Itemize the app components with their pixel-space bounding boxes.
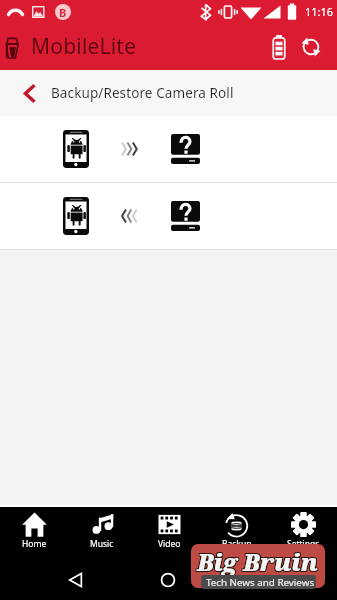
button[interactable]: Home <box>154 566 182 594</box>
button[interactable]: Restore camera roll from drive <box>0 183 337 249</box>
staticText: B <box>59 5 67 20</box>
staticText: Backup/Restore Camera Roll <box>51 84 234 102</box>
button[interactable]: Settings <box>270 507 337 559</box>
staticText: Big Bruin <box>198 545 319 578</box>
staticText: Big Bruin <box>198 546 319 579</box>
button[interactable]: Back <box>61 566 89 594</box>
button[interactable]: Home <box>0 507 68 559</box>
button[interactable]: Video <box>136 507 203 559</box>
staticText: 11:16 <box>305 4 334 19</box>
button[interactable]: Music <box>68 507 136 559</box>
staticText: Big Bruin <box>196 545 317 578</box>
staticText: Big Bruin <box>197 544 318 577</box>
staticText: Big Bruin <box>196 544 317 577</box>
button[interactable]: Backup <box>203 507 270 559</box>
staticText: Home <box>22 538 47 550</box>
staticText: Big Bruin <box>197 545 318 578</box>
button[interactable]: Recent apps <box>248 566 276 594</box>
staticText: Tech News and Reviews <box>206 576 315 589</box>
staticText: Video <box>158 538 181 550</box>
staticText: Big Bruin <box>197 546 318 579</box>
staticText: Big Bruin <box>196 546 317 579</box>
button[interactable]: Backup camera roll to drive <box>0 116 337 182</box>
staticText: MobileLite <box>31 32 137 61</box>
staticText: Settings <box>287 538 320 550</box>
button[interactable]: Backup/Restore Camera Roll <box>0 70 337 116</box>
staticText: Big Bruin <box>198 544 319 577</box>
button[interactable]: Refresh <box>295 24 327 70</box>
button[interactable]: Battery status <box>264 24 294 70</box>
staticText: Backup <box>222 538 252 550</box>
staticText: Music <box>90 538 114 550</box>
